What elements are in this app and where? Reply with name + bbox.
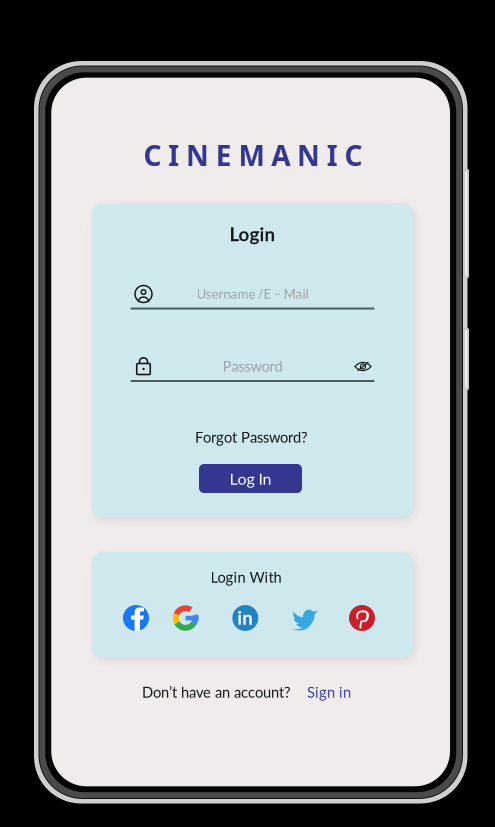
button[interactable]: Log in with Pinterest [349,605,375,631]
staticText: Don’t have an account? [142,683,291,701]
button[interactable]: Sign in [307,683,351,701]
staticText: CINEMANIC [144,136,363,174]
staticText: Password [222,357,282,375]
staticText: Forgot Password? [195,428,308,446]
button[interactable]: Log in with LinkedIn [232,605,258,631]
staticText: Username /E – Mail [196,286,308,302]
staticText: Sign in [307,683,351,701]
button[interactable]: Log in with Twitter [291,604,318,631]
staticText: Login With [210,568,281,586]
button[interactable]: Log in with Google [172,605,198,631]
staticText: in [237,606,253,629]
button[interactable]: Log In [199,464,302,493]
staticText: Login [229,223,275,245]
button[interactable]: Forgot Password? [195,428,308,446]
button[interactable]: Log in with Facebook [123,605,149,631]
button[interactable]: Show password [354,362,371,371]
staticText: Log In [229,469,271,488]
